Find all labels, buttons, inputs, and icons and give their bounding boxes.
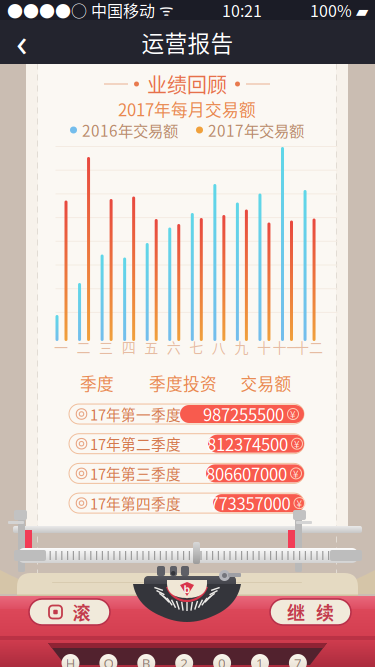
staticText: 季度投资 — [149, 371, 217, 395]
staticText: 五 — [144, 337, 158, 357]
staticText: 七 — [189, 337, 203, 357]
staticText: 17年第三季度 — [90, 463, 181, 484]
staticText: 0 — [218, 654, 226, 667]
staticText: Q — [103, 654, 113, 667]
staticText: 一 — [54, 337, 68, 357]
staticText: 运营报告 — [141, 26, 233, 58]
button[interactable]: 2 — [175, 654, 193, 667]
staticText: 7 — [294, 654, 302, 667]
staticText: ‹ — [16, 17, 28, 67]
staticText: 2016年交易额 — [82, 119, 178, 141]
staticText: 812374500 — [207, 432, 288, 456]
button[interactable]: Back — [0, 20, 44, 64]
staticText: b — [183, 582, 190, 596]
staticText: 十一 — [272, 337, 300, 357]
button[interactable]: 17年第三季度 — [69, 463, 304, 483]
staticText: 17年第四季度 — [90, 492, 181, 514]
staticText: 773357000 — [209, 491, 290, 515]
button[interactable]: 17年第二季度 — [69, 434, 304, 454]
staticText: 1 — [256, 654, 264, 667]
staticText: 续 — [316, 599, 334, 625]
staticText: 六 — [167, 337, 181, 357]
staticText: 2017年每月交易额 — [118, 97, 256, 121]
staticText: 四 — [122, 337, 136, 357]
staticText: 2017年交易额 — [208, 119, 304, 141]
staticText: 17年第一季度 — [90, 403, 181, 425]
button[interactable]: 17年第一季度 — [69, 404, 304, 424]
button[interactable]: 继 — [270, 599, 351, 625]
staticText: 十二 — [295, 337, 323, 357]
button[interactable]: 7 — [289, 654, 307, 667]
button[interactable]: Q — [99, 654, 117, 667]
staticText: 季度 — [80, 371, 114, 395]
button[interactable]: 17年第四季度 — [69, 493, 304, 513]
button[interactable]: 0 — [213, 654, 231, 667]
button[interactable]: B — [137, 654, 155, 667]
button[interactable]: 1 — [251, 654, 269, 667]
staticText: 八 — [212, 337, 226, 357]
staticText: ¥ — [293, 466, 299, 481]
staticText: ●●●●○ 中国移动 ᯤ — [7, 0, 174, 22]
staticText: 九 — [234, 337, 248, 357]
staticText: 滚 — [72, 599, 90, 625]
staticText: 交易额 — [240, 371, 291, 395]
staticText: 继 — [287, 599, 305, 625]
staticText: ¥ — [296, 496, 302, 510]
staticText: 十 — [257, 337, 271, 357]
staticText: 17年第二季度 — [90, 433, 181, 454]
staticText: 987255500 — [203, 402, 284, 426]
staticText: B — [142, 654, 151, 667]
staticText: ¥ — [290, 407, 296, 421]
button[interactable]: 滚 — [29, 599, 110, 625]
button[interactable]: H — [61, 654, 79, 667]
staticText: 三 — [99, 337, 113, 357]
staticText: 100% ▰ — [310, 0, 368, 22]
staticText: 业绩回顾 — [147, 69, 227, 98]
staticText: H — [65, 654, 75, 667]
staticText: 二 — [77, 337, 91, 357]
staticText: 10:21 — [222, 0, 262, 22]
staticText: 2 — [180, 654, 188, 667]
staticText: 806607000 — [206, 461, 287, 485]
staticText: ¥ — [294, 436, 300, 451]
